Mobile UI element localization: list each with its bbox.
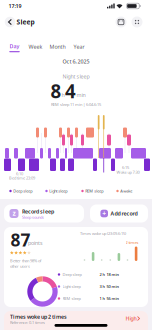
staticText: Month — [49, 43, 65, 50]
staticText: Times woke up (23:09-6:15) — [80, 231, 126, 236]
staticText: Week — [28, 43, 42, 50]
staticText: other users — [10, 264, 30, 269]
staticText: Light sleep — [62, 284, 80, 289]
staticText: Add record — [111, 210, 138, 217]
staticText: points — [28, 239, 43, 247]
staticText: 2 times — [125, 240, 138, 245]
staticText: Times woke up 2 times — [10, 313, 67, 320]
staticText: Day — [9, 43, 19, 50]
staticText: Awake — [120, 188, 132, 194]
staticText: 6:10 — [16, 171, 23, 176]
staticText: REM sleep — [62, 296, 80, 301]
button[interactable]: z — [4, 204, 84, 222]
staticText: Year — [73, 43, 84, 50]
staticText: Bed time 23:09 — [9, 175, 35, 181]
staticText: REM sleep — [85, 188, 103, 194]
staticText: REM sleep 11 min | 6:04-6:15 — [51, 102, 101, 107]
button[interactable]: Year — [73, 43, 84, 50]
staticText: 3 h 50 min — [99, 284, 119, 289]
staticText: 6:15 — [122, 165, 129, 170]
staticText: Reference: 0-1 times — [10, 320, 45, 325]
button[interactable]: Week — [28, 43, 42, 50]
staticText: Sleep sounds — [22, 214, 44, 220]
staticText: Sleep — [16, 18, 34, 26]
staticText: 4 — [65, 79, 76, 103]
staticText: Oct 6, 2025 — [62, 58, 89, 65]
button[interactable]: Calendar — [115, 16, 126, 27]
staticText: 17:19 — [8, 2, 21, 10]
button[interactable]: Back — [5, 17, 15, 27]
button[interactable]: Times woke up 2 times — [4, 311, 148, 330]
staticText: z — [12, 209, 15, 218]
staticText: Better than 98% of — [10, 258, 41, 263]
button[interactable]: More — [131, 16, 142, 27]
button[interactable]: + — [90, 204, 148, 222]
staticText: 1 h 56 min — [99, 296, 119, 301]
button[interactable]: Month — [49, 43, 65, 50]
staticText: Deep sleep — [62, 272, 81, 277]
staticText: Woke up 7:30 — [116, 170, 139, 175]
button[interactable]: Oct 6, 2025 — [62, 58, 89, 65]
staticText: 2 h 18 min — [99, 272, 119, 277]
staticText: Record sleep — [22, 208, 54, 215]
staticText: min — [76, 91, 85, 99]
staticText: High — [125, 315, 136, 322]
staticText: Deep sleep — [13, 188, 32, 194]
staticText: h — [61, 91, 64, 99]
staticText: 8 — [50, 79, 61, 103]
staticText: + — [102, 209, 106, 218]
button[interactable]: Day — [9, 43, 20, 52]
staticText: 87 — [10, 228, 30, 251]
staticText: Night sleep — [62, 73, 89, 80]
staticText: Light sleep — [49, 188, 67, 194]
